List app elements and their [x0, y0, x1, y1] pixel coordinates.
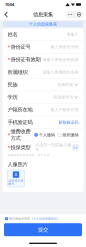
button[interactable]: 我已阅读并同意 [0, 214, 86, 223]
staticText: 10:04 [5, 2, 14, 7]
staticText: 民族 [7, 81, 17, 88]
button[interactable]: * [2, 53, 83, 66]
button[interactable]: Back [0, 9, 12, 20]
button[interactable]: 民族 [2, 79, 83, 91]
staticText: 请输入所属组织名称 [42, 70, 78, 74]
button[interactable]: 姓名 [2, 28, 83, 41]
staticText: * [7, 43, 10, 51]
staticText: 输入户籍所在地 [50, 107, 78, 112]
staticText: 请输入身份证有效期 [42, 57, 78, 62]
staticText: 我已阅读并同意 [8, 217, 30, 220]
staticText: 组织缴纳 [62, 132, 78, 137]
staticText: 人像照片 [7, 161, 27, 168]
button[interactable]: 户籍所在地 [2, 104, 83, 116]
staticText: 点击扫一扫或输入编号 [35, 142, 71, 152]
staticText: 姓名 [7, 31, 17, 38]
button[interactable]: More [66, 11, 75, 17]
staticText: 缴费收费方式 [10, 128, 30, 141]
staticText: 身份证号 [10, 44, 30, 50]
staticText: 提交 [38, 226, 48, 233]
staticText: 请输入 [66, 32, 78, 37]
button[interactable]: 个人缴纳 [34, 132, 55, 137]
staticText: 请选择学历 [53, 95, 73, 100]
button[interactable]: 提交 [0, 223, 86, 236]
button[interactable]: Scan code [71, 145, 78, 150]
button[interactable]: 点击或上传图片 [7, 170, 24, 187]
staticText: 身份证有效期 [10, 56, 40, 63]
staticText: * [7, 131, 10, 138]
staticText: 投保类型 [10, 144, 30, 151]
staticText: 学历 [7, 94, 17, 100]
staticText: 个人缴纳 [39, 132, 55, 137]
staticText: * [7, 56, 10, 63]
staticText: 输入身份证号码 [50, 44, 78, 49]
staticText: 点击或上传图片 [8, 179, 23, 186]
staticText: 手机验证码 [7, 119, 32, 126]
staticText: 个人信息采集表 [29, 22, 57, 27]
button[interactable]: 手机验证码 [2, 116, 83, 129]
staticText: 获取验证码 [58, 120, 78, 125]
button[interactable]: * [2, 41, 83, 53]
button[interactable]: Close [75, 11, 83, 17]
staticText: 所属组织 [7, 69, 27, 75]
staticText: 户籍所在地 [7, 106, 32, 113]
staticText: 请确保资料真实有效，便于审核 [7, 153, 49, 157]
staticText: 选择民族 [57, 82, 73, 87]
button[interactable]: 所属组织 [2, 66, 83, 78]
staticText: 《个人信息采集协议》 [30, 217, 60, 220]
button[interactable]: 学历 [2, 91, 83, 104]
staticText: * [7, 144, 10, 151]
button[interactable]: 组织缴纳 [55, 132, 78, 137]
staticText: 信息采集 [33, 11, 53, 18]
